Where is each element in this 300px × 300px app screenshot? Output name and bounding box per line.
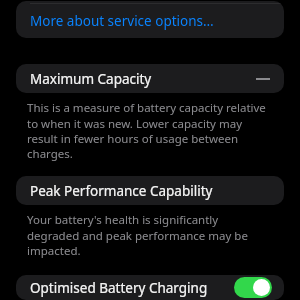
staticText: Optimised Battery Charging bbox=[30, 279, 208, 297]
button[interactable]: Maximum Capacity bbox=[16, 64, 284, 93]
button[interactable]: More about service options… bbox=[16, 1, 284, 38]
other: Collapse bbox=[254, 70, 272, 88]
button[interactable]: Optimised Battery Charging toggle, on bbox=[234, 277, 272, 298]
staticText: Peak Performance Capability bbox=[30, 182, 213, 200]
button[interactable]: Peak Performance Capability bbox=[16, 176, 284, 205]
staticText: More about service options… bbox=[30, 12, 214, 30]
staticText: Maximum Capacity bbox=[30, 70, 152, 88]
staticText: This is a measure of battery capacity re… bbox=[27, 100, 273, 161]
staticText: Your battery's health is significantly d… bbox=[27, 212, 273, 258]
button[interactable]: Optimised Battery Charging bbox=[16, 275, 284, 300]
